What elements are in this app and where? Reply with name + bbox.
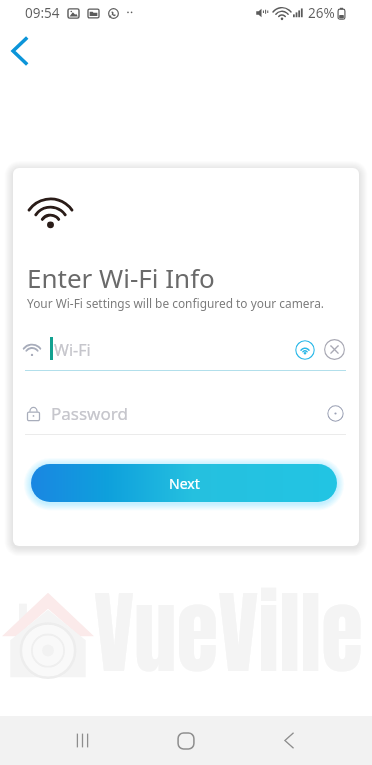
button[interactable]: Next [31,464,337,502]
staticText: Enter Wi-Fi Info [27,260,215,295]
staticText: VueVille [94,564,363,701]
staticText: Your Wi-Fi settings will be configured t… [27,295,324,311]
button[interactable]: Clear [323,338,345,360]
button[interactable]: Back [267,716,311,765]
staticText: 09:54 [25,4,60,22]
staticText: Password [51,402,128,425]
button[interactable]: Recent apps [60,716,104,765]
button[interactable]: Back [0,30,40,72]
staticText: Next [169,474,200,493]
button[interactable]: Show password [324,402,346,424]
staticText: Wi-Fi [54,339,91,361]
button[interactable]: Scan Wi-Fi [294,339,316,361]
staticText: 26% [308,4,335,22]
button[interactable]: Home [163,716,208,765]
